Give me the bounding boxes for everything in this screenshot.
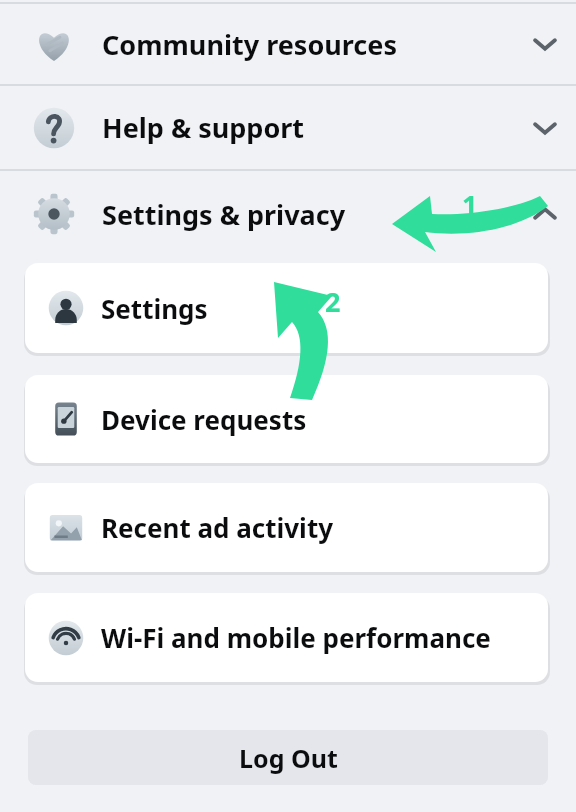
button[interactable]: Recent ad activity (25, 483, 548, 572)
button[interactable]: Settings & privacy (0, 170, 576, 258)
button[interactable]: Settings (25, 263, 548, 353)
staticText: Log Out (239, 741, 338, 775)
staticText: Recent ad activity (101, 510, 334, 545)
staticText: Wi-Fi and mobile performance (101, 620, 491, 655)
staticText: Device requests (101, 402, 307, 437)
button[interactable]: Help & support (0, 85, 576, 170)
button[interactable]: Device requests (25, 375, 548, 463)
staticText: Help & support (102, 109, 532, 146)
button[interactable]: Community resources (0, 3, 576, 85)
staticText: Settings (101, 291, 208, 326)
staticText: 1 (462, 186, 478, 223)
button[interactable]: Wi-Fi and mobile performance (25, 593, 548, 682)
staticText: 2 (325, 283, 341, 320)
staticText: Settings & privacy (102, 196, 532, 233)
staticText: Community resources (102, 26, 532, 63)
button[interactable]: Log Out (28, 730, 548, 785)
